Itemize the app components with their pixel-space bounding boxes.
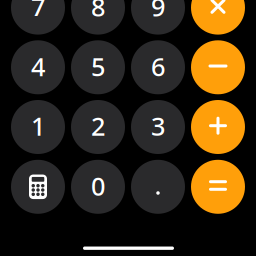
- button[interactable]: Subtract: [191, 40, 245, 94]
- staticText: 0: [91, 169, 105, 203]
- staticText: 9: [151, 0, 165, 23]
- staticText: 7: [31, 0, 45, 23]
- staticText: 4: [31, 49, 45, 83]
- button[interactable]: 2: [71, 100, 125, 154]
- button[interactable]: 9: [131, 0, 185, 35]
- button[interactable]: 7: [11, 0, 65, 35]
- staticText: 8: [91, 0, 105, 23]
- button[interactable]: 4: [11, 40, 65, 94]
- button[interactable]: 3: [131, 100, 185, 154]
- button[interactable]: 6: [131, 40, 185, 94]
- button[interactable]: Add: [191, 100, 245, 154]
- button[interactable]: Multiply: [191, 0, 245, 35]
- staticText: 3: [151, 109, 165, 143]
- button[interactable]: Decimal point: [131, 160, 185, 214]
- staticText: 2: [91, 109, 105, 143]
- button[interactable]: 8: [71, 0, 125, 35]
- staticText: 1: [31, 109, 45, 143]
- button[interactable]: Calculator: [11, 160, 65, 214]
- staticText: 5: [91, 49, 105, 83]
- staticText: 6: [151, 49, 165, 83]
- button[interactable]: Equals: [191, 160, 245, 214]
- button[interactable]: 1: [11, 100, 65, 154]
- button[interactable]: 5: [71, 40, 125, 94]
- button[interactable]: 0: [71, 160, 125, 214]
